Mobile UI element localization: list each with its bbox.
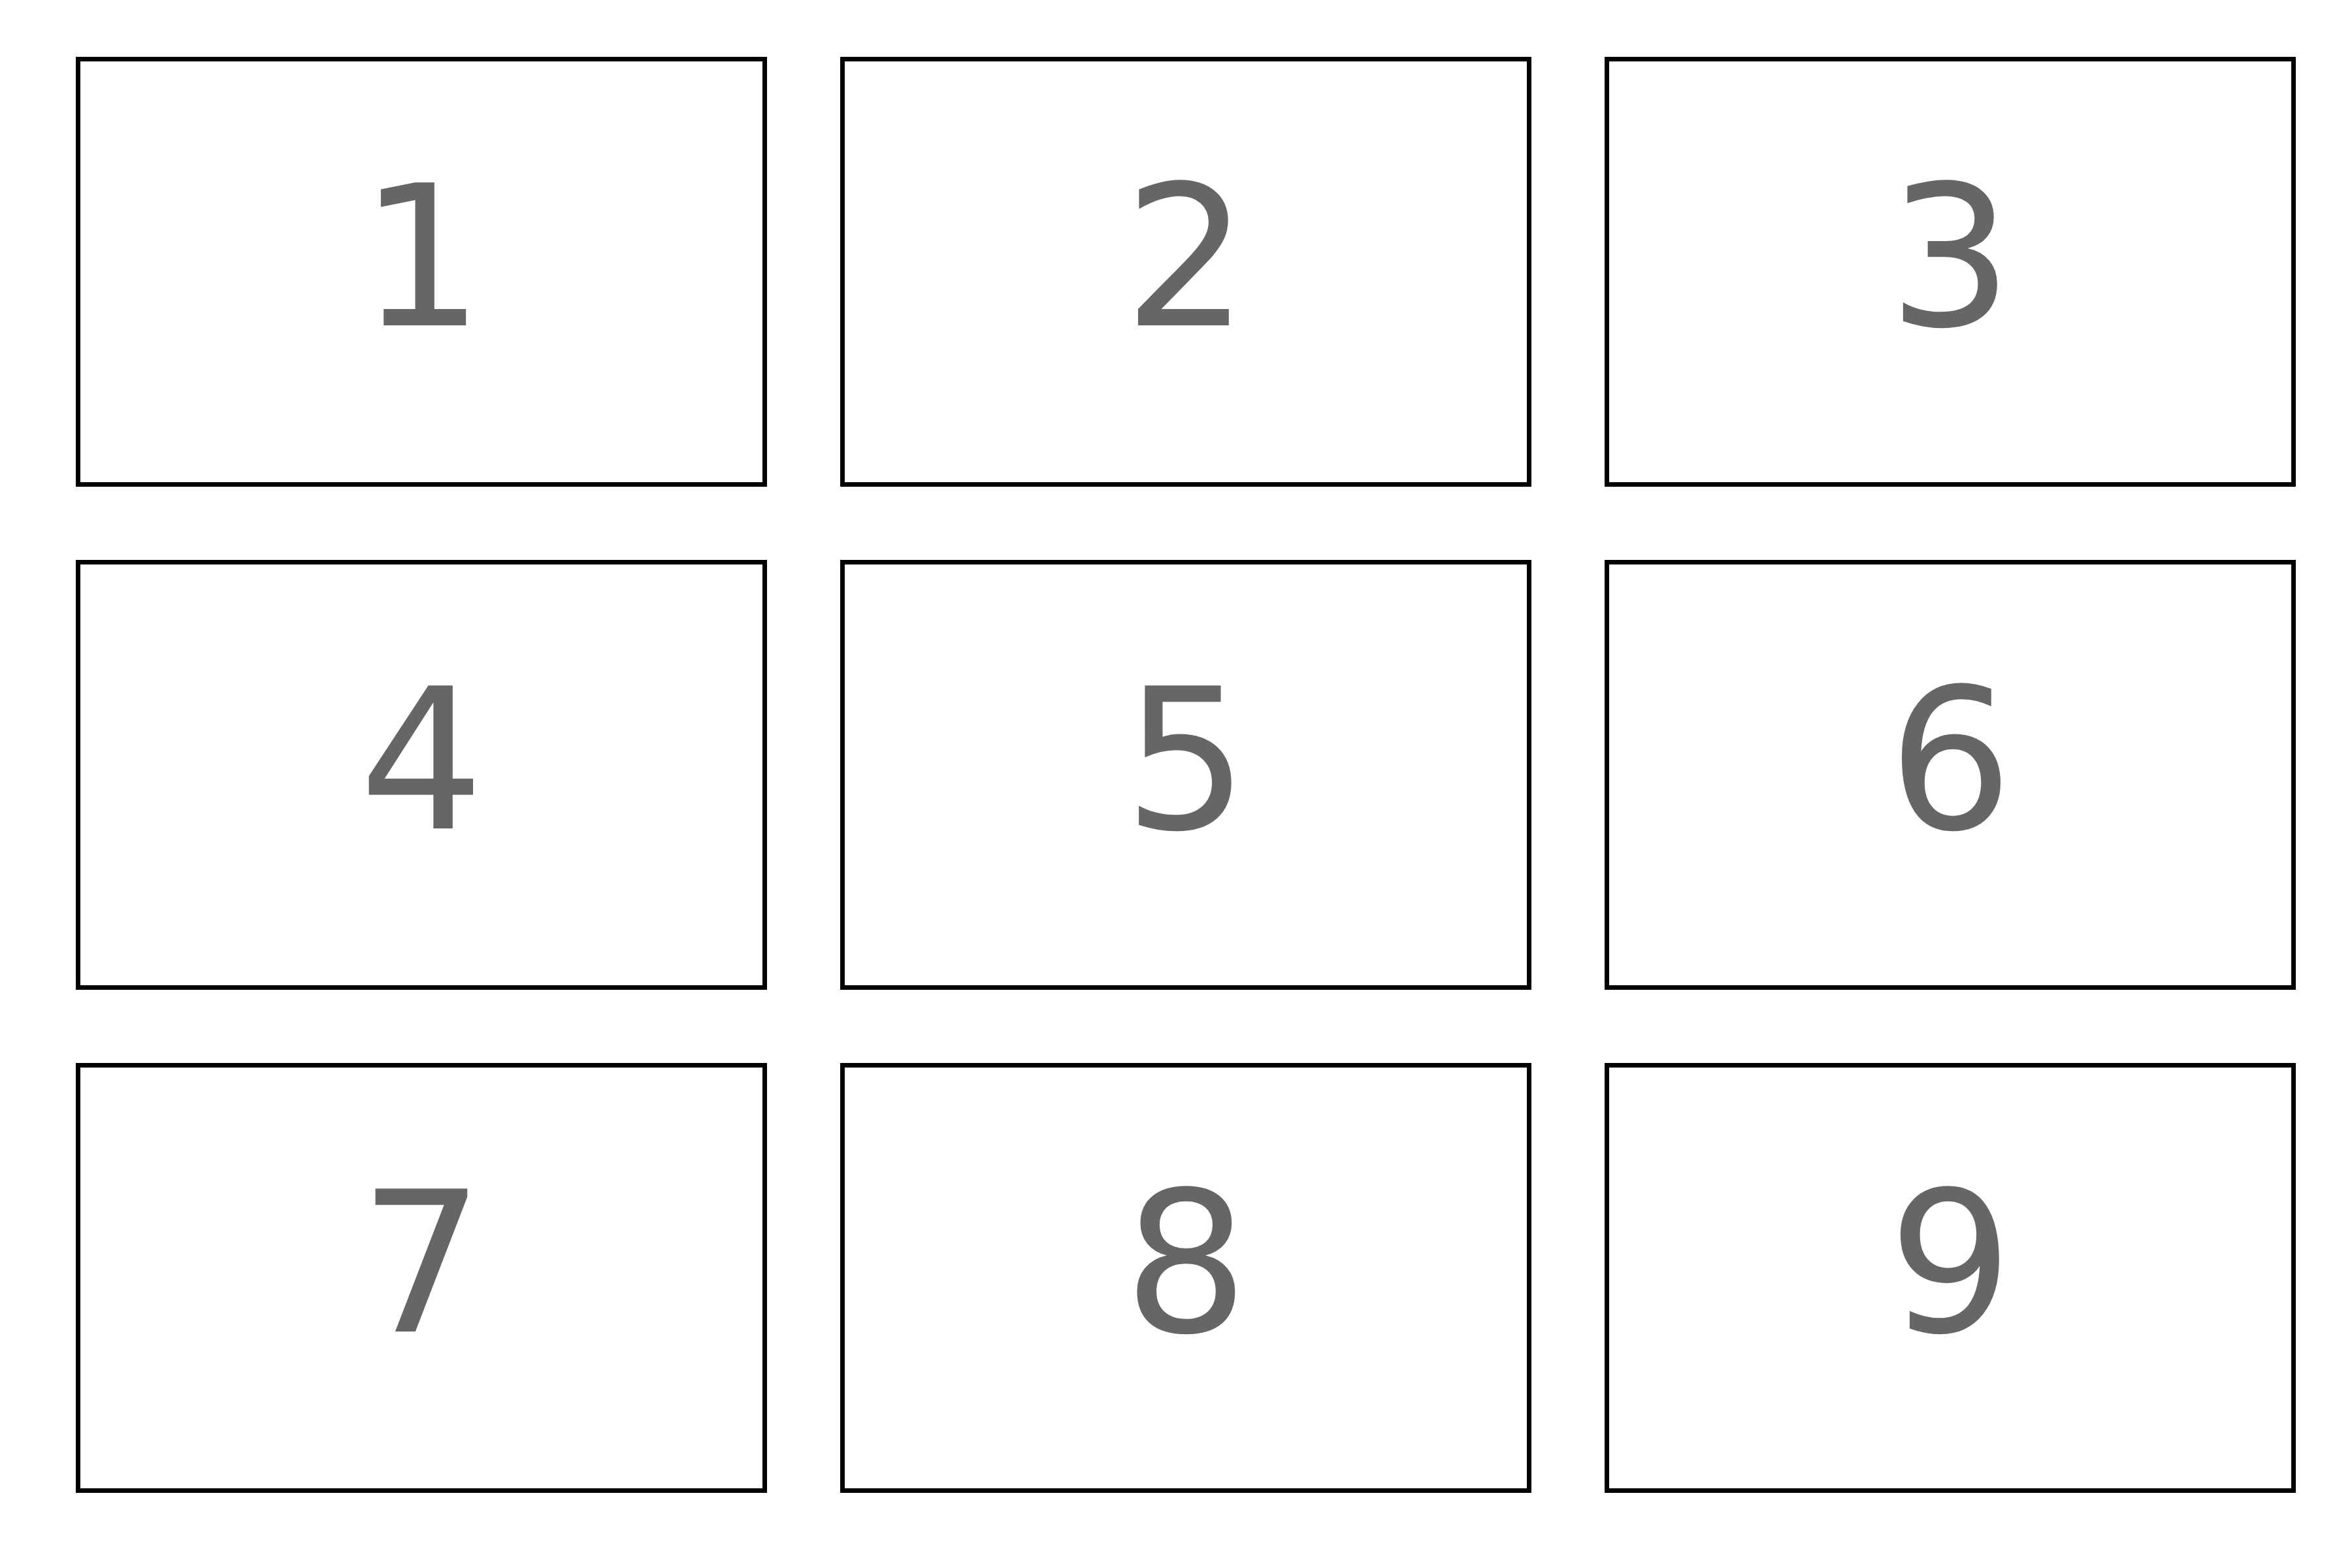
button[interactable]: 3 [1605,57,2296,487]
staticText: 7 [359,1150,484,1378]
staticText: 3 [1888,144,2013,372]
staticText: 2 [1124,144,1249,372]
staticText: 1 [359,144,484,372]
button[interactable]: 9 [1605,1063,2296,1493]
staticText: 8 [1124,1150,1249,1378]
button[interactable]: 8 [840,1063,1531,1493]
staticText: 5 [1124,647,1249,875]
staticText: 4 [359,647,484,875]
button[interactable]: 5 [840,560,1531,990]
button[interactable]: 6 [1605,560,2296,990]
button[interactable]: 1 [76,57,767,487]
staticText: 9 [1888,1150,2013,1378]
button[interactable]: 2 [840,57,1531,487]
button[interactable]: 4 [76,560,767,990]
staticText: 6 [1888,647,2013,875]
button[interactable]: 7 [76,1063,767,1493]
